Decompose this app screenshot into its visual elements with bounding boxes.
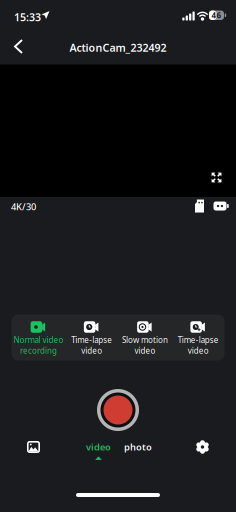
staticText: Normal video recording	[13, 335, 63, 356]
button[interactable]: Normal video recording	[11, 314, 65, 360]
staticText: 4K/30	[11, 200, 36, 213]
button[interactable]: photo	[121, 441, 155, 453]
staticText: Time-lapse video	[177, 335, 218, 356]
staticText: 15:33	[14, 10, 41, 24]
button[interactable]: Slow motion video	[118, 314, 171, 360]
button[interactable]: video	[82, 441, 114, 465]
staticText: Time-lapse video	[71, 335, 112, 356]
staticText: ActionCam_232492	[69, 40, 166, 55]
button[interactable]: Back	[4, 32, 32, 60]
button[interactable]: Gallery	[20, 436, 46, 458]
button[interactable]: Time-lapse video	[65, 314, 118, 360]
staticText: photo	[124, 441, 152, 453]
button[interactable]: Settings	[189, 436, 215, 458]
button[interactable]: Record	[94, 386, 142, 434]
button[interactable]: Time-lapse video	[171, 314, 224, 360]
staticText: video	[86, 441, 111, 453]
staticText: Slow motion video	[122, 335, 168, 356]
staticText: 46	[211, 10, 221, 20]
